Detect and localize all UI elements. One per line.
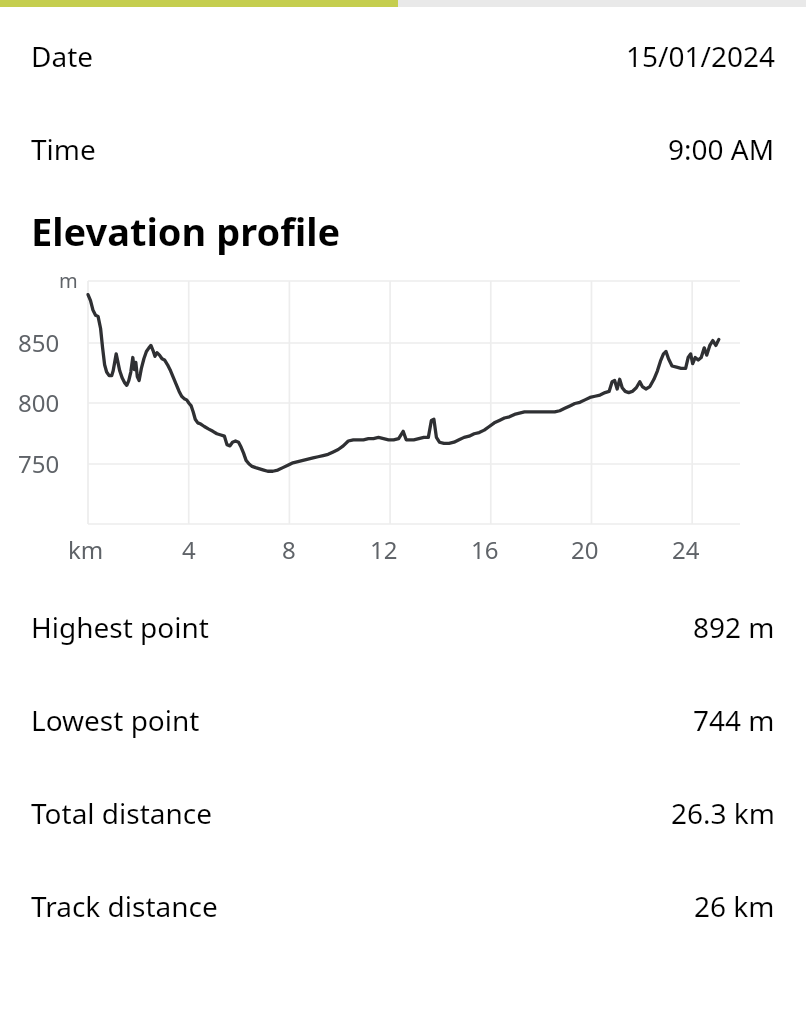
staticText: km bbox=[68, 533, 104, 566]
staticText: m bbox=[59, 267, 78, 294]
staticText: 26.3 km bbox=[671, 794, 775, 832]
button[interactable]: Highest point bbox=[0, 595, 806, 659]
button[interactable]: Total distance bbox=[0, 781, 806, 845]
staticText: Date bbox=[31, 37, 94, 75]
staticText: 850 bbox=[18, 326, 60, 359]
staticText: 26 km bbox=[694, 887, 775, 925]
staticText: 9:00 AM bbox=[668, 130, 775, 168]
staticText: Total distance bbox=[31, 794, 213, 832]
staticText: 744 m bbox=[693, 701, 775, 739]
staticText: 892 m bbox=[693, 608, 775, 646]
staticText: 16 bbox=[471, 533, 499, 566]
staticText: Track distance bbox=[31, 887, 218, 925]
staticText: 12 bbox=[370, 533, 398, 566]
staticText: 8 bbox=[282, 533, 296, 566]
button[interactable]: Time bbox=[0, 117, 806, 181]
staticText: 800 bbox=[18, 386, 60, 419]
staticText: 4 bbox=[182, 533, 196, 566]
staticText: 750 bbox=[18, 447, 60, 480]
staticText: 15/01/2024 bbox=[626, 37, 775, 75]
staticText: Time bbox=[31, 130, 96, 168]
button[interactable]: Date bbox=[0, 24, 806, 88]
staticText: Lowest point bbox=[31, 701, 200, 739]
staticText: 20 bbox=[571, 533, 599, 566]
staticText: Elevation profile bbox=[31, 205, 341, 257]
button[interactable]: Track distance bbox=[0, 874, 806, 938]
staticText: 24 bbox=[672, 533, 700, 566]
staticText: Highest point bbox=[31, 608, 209, 646]
button[interactable]: Lowest point bbox=[0, 688, 806, 752]
